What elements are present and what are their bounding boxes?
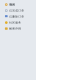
staticText: 已删除订单	[9, 15, 24, 18]
staticText: 已完成订单	[9, 9, 24, 12]
button[interactable]: 已完成订单	[0, 8, 36, 14]
button[interactable]: 解密存档	[0, 26, 36, 32]
staticText: 社区服务	[9, 21, 21, 24]
staticText: 解密存档	[9, 27, 21, 30]
button[interactable]: 社区服务	[0, 20, 36, 26]
staticText: 我的	[9, 3, 15, 6]
button[interactable]: 已删除订单	[0, 14, 36, 20]
button[interactable]: 我的	[0, 2, 36, 8]
